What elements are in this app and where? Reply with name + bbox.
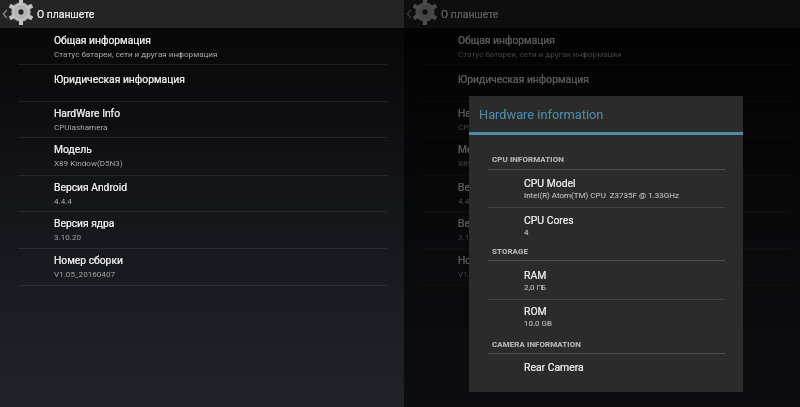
button[interactable]: Версия ядра (404, 211, 800, 248)
button[interactable]: Settings (8, 0, 34, 26)
staticText: Версия ядра (54, 217, 115, 229)
button[interactable]: Номер сборки (0, 248, 404, 285)
button[interactable]: Версия Android (0, 175, 404, 212)
staticText: Модель (458, 143, 496, 155)
staticText: Статус батареи, сети и другая информация (54, 49, 218, 58)
staticText: Hardware information (479, 107, 604, 122)
staticText: 4.4.4 (458, 196, 476, 205)
staticText: CPUlashamera (54, 122, 108, 131)
staticText: Intel(R) Atom(TM) CPU Z3735F @ 1.33GHz (524, 191, 679, 200)
staticText: О планшете (441, 8, 499, 20)
staticText: X89 Kindow(D5N3) (458, 158, 527, 167)
button[interactable]: Общая информация (404, 28, 800, 64)
button[interactable]: Модель (0, 137, 404, 175)
button[interactable]: Back (404, 0, 413, 28)
button[interactable]: Back (0, 0, 9, 28)
staticText: 10.0 GB (524, 319, 553, 328)
staticText: CPU Cores (524, 214, 574, 226)
staticText: Модель (54, 143, 92, 155)
button[interactable]: Общая информация (0, 28, 404, 64)
staticText: Версия Android (54, 181, 127, 193)
button[interactable]: Юридическая информация (404, 64, 800, 101)
staticText: 2,0 ГБ (524, 283, 547, 292)
button[interactable]: ROM (469, 305, 743, 333)
button[interactable]: Rear Camera (469, 361, 743, 381)
button[interactable]: Версия Android (404, 175, 800, 212)
staticText: Версия ядра (458, 217, 519, 229)
button[interactable]: HardWare Info (404, 101, 800, 138)
staticText: V1.05_20160407 (458, 269, 519, 278)
staticText: ROM (524, 305, 547, 317)
staticText: HardWare Info (54, 107, 121, 119)
staticText: Версия Android (458, 181, 531, 193)
button[interactable]: CPU Cores (469, 214, 743, 242)
staticText: 3.10.20 (54, 232, 82, 241)
staticText: V1.05_20160407 (54, 269, 115, 278)
button[interactable]: HardWare Info (0, 101, 404, 138)
staticText: Общая информация (458, 34, 555, 46)
button[interactable]: Версия ядра (0, 211, 404, 248)
staticText: Номер сборки (54, 254, 123, 266)
button[interactable]: Номер сборки (404, 248, 800, 285)
staticText: Номер сборки (458, 254, 527, 266)
button[interactable]: Юридическая информация (0, 64, 404, 101)
staticText: 3.10.20 (458, 232, 486, 241)
button[interactable]: Settings (412, 0, 438, 26)
staticText: CPU Model (524, 177, 576, 189)
staticText: Статус батареи, сети и другая информация (458, 49, 622, 58)
staticText: 4 (524, 228, 529, 237)
staticText: RAM (524, 269, 547, 281)
staticText: CPU INFORMATION (492, 155, 564, 164)
button[interactable]: CPU Model (469, 177, 743, 205)
staticText: О планшете (37, 8, 95, 20)
staticText: CPUlashamera (458, 122, 512, 131)
staticText: CAMERA INFORMATION (492, 340, 581, 349)
staticText: HardWare Info (458, 107, 525, 119)
staticText: X89 Kindow(D5N3) (54, 158, 123, 167)
staticText: Общая информация (54, 34, 151, 46)
staticText: 4.4.4 (54, 196, 72, 205)
staticText: Юридическая информация (54, 73, 185, 85)
staticText: Юридическая информация (458, 73, 589, 85)
staticText: Rear Camera (524, 361, 584, 373)
button[interactable]: RAM (469, 269, 743, 297)
staticText: STORAGE (492, 247, 529, 256)
button[interactable]: Модель (404, 137, 800, 175)
